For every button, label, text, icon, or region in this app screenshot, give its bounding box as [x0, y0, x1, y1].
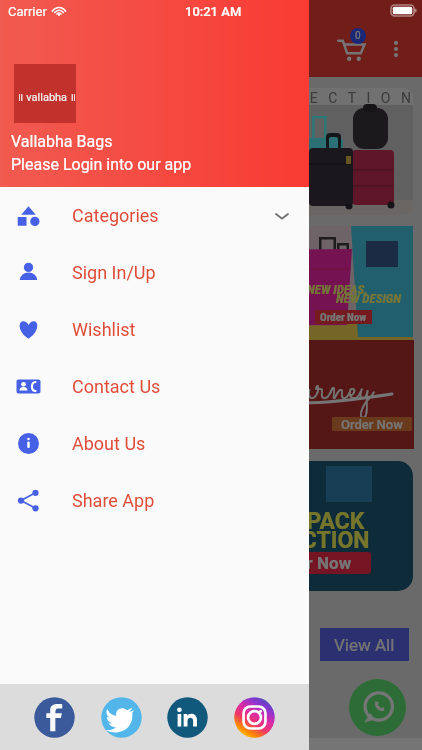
staticText: Vallabha Bags: [11, 132, 113, 151]
button[interactable]: Sign In/Up: [0, 244, 309, 301]
staticText: ॥ vallabha ॥: [17, 89, 77, 104]
button[interactable]: COLLECTION: [10, 88, 413, 215]
staticText: Sign In/Up: [72, 262, 156, 283]
button[interactable]: View All: [320, 628, 409, 661]
staticText: Wishlist: [72, 319, 136, 340]
button[interactable]: WhatsApp: [349, 679, 406, 736]
button[interactable]: More options: [374, 27, 418, 71]
button[interactable]: LinkedIn: [166, 696, 209, 739]
staticText: COLLECTION: [233, 527, 370, 554]
button[interactable]: Instagram: [233, 696, 276, 739]
staticText: Carrier: [8, 4, 47, 19]
staticText: Order Now: [270, 553, 352, 573]
staticText: About Us: [72, 433, 146, 454]
button[interactable]: Cart: [328, 26, 374, 72]
staticText: Share App: [72, 490, 155, 511]
staticText: 0: [355, 30, 361, 42]
staticText: Order Now: [320, 311, 367, 324]
button[interactable]: BACKPACK: [10, 461, 413, 591]
button[interactable]: Facebook: [33, 696, 76, 739]
staticText: Order Now: [341, 417, 403, 431]
staticText: BACKPACK: [247, 508, 365, 535]
button[interactable]: About Us: [0, 415, 309, 472]
staticText: NEW IDEAS,: [307, 282, 368, 297]
staticText: NEW DESIGN: [336, 291, 401, 306]
button[interactable]: Journey: [10, 340, 414, 449]
staticText: Journey: [263, 358, 373, 421]
button[interactable]: Share App: [0, 472, 309, 529]
button[interactable]: Contact Us: [0, 358, 309, 415]
staticText: Categories: [72, 205, 159, 226]
staticText: COLLECTION: [234, 90, 413, 106]
staticText: 10:21 AM: [185, 4, 242, 19]
button[interactable]: Twitter: [100, 696, 143, 739]
button[interactable]: NEW IDEAS,: [10, 226, 413, 337]
staticText: Please Login into our app: [11, 155, 192, 174]
button[interactable]: Wishlist: [0, 301, 309, 358]
staticText: Contact Us: [72, 376, 161, 397]
button[interactable]: Categories: [0, 187, 309, 244]
staticText: View All: [334, 635, 395, 655]
